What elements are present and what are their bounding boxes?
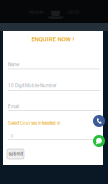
staticText: PREMIUM: [28, 10, 43, 15]
staticText: submit: [8, 151, 22, 157]
button[interactable]: Call us: [93, 115, 105, 127]
staticText: Select Courses interested in: [8, 120, 61, 126]
staticText: ENQUIRE NOW !: [31, 35, 74, 43]
staticText: Email: [8, 104, 19, 109]
staticText: c: [11, 133, 13, 138]
staticText: 10 Digit Mobile Number: [8, 83, 57, 88]
staticText: Name: [8, 62, 19, 67]
button[interactable]: Chat on WhatsApp: [93, 135, 105, 147]
staticText: COFFEE: [67, 10, 79, 15]
button[interactable]: submit: [7, 149, 24, 159]
